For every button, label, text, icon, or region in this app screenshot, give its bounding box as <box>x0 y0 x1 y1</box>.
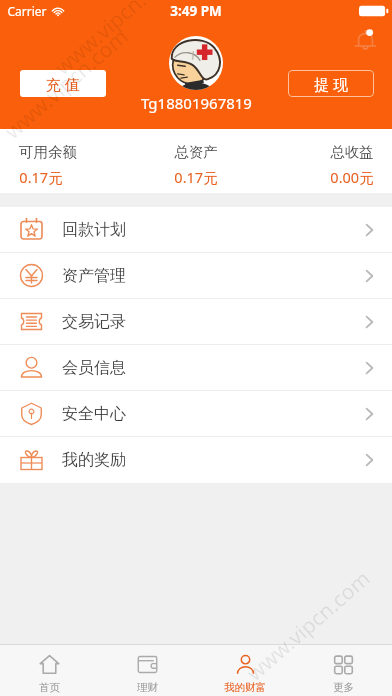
staticText: 总资产 <box>174 143 218 161</box>
staticText: 可用余额 <box>19 143 77 161</box>
staticText: 更多 <box>333 681 354 694</box>
staticText: www.vipcn.com <box>0 22 134 145</box>
button[interactable]: 资产管理 <box>0 253 392 299</box>
staticText: 会员信息 <box>62 358 126 378</box>
staticText: 资产管理 <box>62 266 126 286</box>
staticText: 充 值 <box>46 74 80 94</box>
button[interactable]: 充 值 <box>20 70 106 97</box>
staticText: Tg18801967819 <box>141 93 252 113</box>
staticText: 首页 <box>39 681 60 694</box>
button[interactable]: 更多 <box>294 645 392 696</box>
staticText: 0.00元 <box>330 167 374 187</box>
staticText: 0.17元 <box>174 167 218 187</box>
button[interactable]: Notifications <box>354 28 377 51</box>
staticText: 安全中心 <box>62 404 126 424</box>
staticText: 3:49 PM <box>170 2 222 20</box>
staticText: 0.17元 <box>19 167 63 187</box>
button[interactable]: 理财 <box>98 645 196 696</box>
staticText: www.vipcn.com <box>48 0 184 81</box>
staticText: www.vipcn.com <box>240 564 376 687</box>
button[interactable]: 提 现 <box>288 70 374 97</box>
button[interactable]: 会员信息 <box>0 345 392 391</box>
staticText: 总收益 <box>330 143 374 161</box>
staticText: 交易记录 <box>62 312 126 332</box>
staticText: 我的奖励 <box>62 450 126 470</box>
button[interactable]: 回款计划 <box>0 207 392 253</box>
staticText: 我的财富 <box>224 681 266 694</box>
staticText: 回款计划 <box>62 220 126 240</box>
button[interactable]: 交易记录 <box>0 299 392 345</box>
staticText: 提 现 <box>314 74 348 94</box>
button[interactable]: 我的奖励 <box>0 437 392 483</box>
button[interactable]: 我的财富 <box>196 645 294 696</box>
button[interactable]: Avatar <box>169 36 223 90</box>
staticText: Carrier <box>7 3 47 19</box>
staticText: 理财 <box>137 681 158 694</box>
button[interactable]: 首页 <box>0 645 98 696</box>
button[interactable]: 安全中心 <box>0 391 392 437</box>
